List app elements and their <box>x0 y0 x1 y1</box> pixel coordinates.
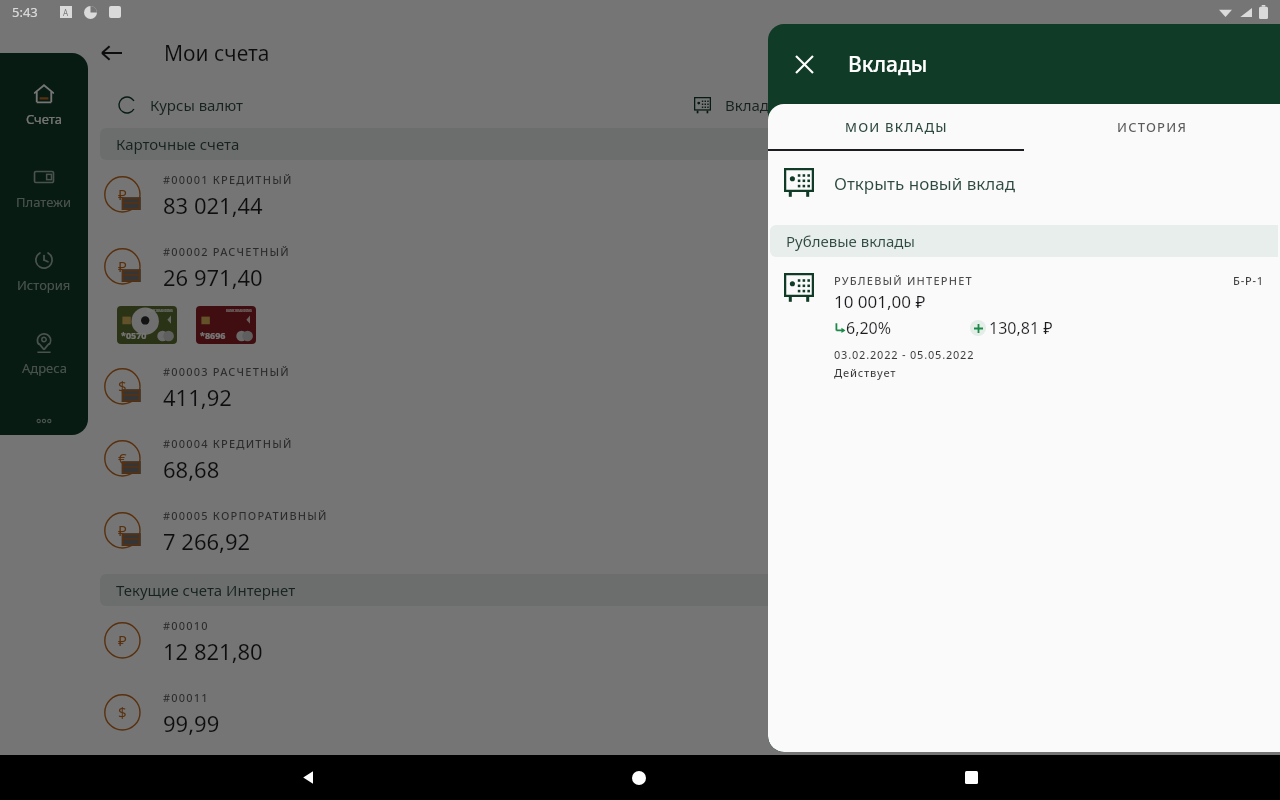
button[interactable]: Вклады <box>684 82 1280 128</box>
staticText: Вклады <box>848 50 928 79</box>
staticText: Счета <box>26 110 63 128</box>
staticText: Открыть новый вклад <box>834 172 1016 195</box>
staticText: #00005 КОРПОРАТИВНЫЙ <box>163 508 328 523</box>
button[interactable]: Back <box>285 755 331 800</box>
staticText: 411,92 <box>163 382 232 412</box>
staticText: *8696 <box>200 329 226 341</box>
button[interactable]: $ <box>88 352 1280 424</box>
staticText: Действует <box>834 365 897 380</box>
staticText: ₽ <box>118 184 127 204</box>
button[interactable]: Курсы валют <box>88 82 684 128</box>
button[interactable]: BANK BRANDING <box>117 306 177 344</box>
button[interactable]: МОИ ВКЛАДЫ <box>768 104 1024 149</box>
button[interactable]: ИСТОРИЯ <box>1024 104 1280 149</box>
button[interactable]: ₽ <box>88 606 1280 678</box>
staticText: #00010 <box>163 618 209 633</box>
staticText: Платежи <box>16 193 72 211</box>
button[interactable]: История <box>0 241 88 302</box>
staticText: 03.02.2022 - 05.05.2022 <box>834 347 975 362</box>
staticText: История <box>17 276 71 294</box>
staticText: ₽ <box>118 256 127 276</box>
staticText: ₽ <box>118 520 127 540</box>
staticText: ИСТОРИЯ <box>1117 118 1188 136</box>
staticText: #00001 КРЕДИТНЫЙ <box>163 172 293 187</box>
staticText: 130,81 ₽ <box>989 317 1053 339</box>
staticText: 5:43 <box>12 3 38 21</box>
staticText: 7 266,92 <box>163 526 251 556</box>
staticText: 83 021,44 <box>163 190 263 220</box>
staticText: Б-Р-1 <box>1233 273 1264 288</box>
staticText: 68,68 <box>163 454 220 484</box>
staticText: *0570 <box>121 329 147 341</box>
staticText: $ <box>118 376 127 396</box>
button[interactable]: Адреса <box>0 324 88 385</box>
staticText: Карточные счета <box>116 134 240 154</box>
button[interactable]: ₽ <box>88 496 1280 568</box>
staticText: Текущие счета Интернет <box>116 580 296 600</box>
button[interactable]: Ещё <box>0 407 88 435</box>
staticText: 99,99 <box>163 708 220 738</box>
button[interactable]: Открыть новый вклад <box>768 151 1280 215</box>
staticText: ₽ <box>118 630 127 650</box>
button[interactable]: BANK BRANDING <box>196 306 256 344</box>
staticText: A <box>63 7 69 18</box>
staticText: 26 971,40 <box>163 262 263 292</box>
button[interactable]: ₽ <box>88 160 1280 232</box>
button[interactable]: Home <box>616 755 662 800</box>
staticText: #00003 РАСЧЕТНЫЙ <box>163 364 290 379</box>
staticText: $ <box>118 702 127 722</box>
button[interactable]: € <box>88 424 1280 496</box>
staticText: 10 001,00 ₽ <box>834 290 926 313</box>
staticText: BANK BRANDING <box>226 309 252 313</box>
staticText: Адреса <box>22 359 67 377</box>
staticText: BANK BRANDING <box>147 309 173 313</box>
staticText: #00002 РАСЧЕТНЫЙ <box>163 244 290 259</box>
button[interactable]: $ <box>88 678 1280 750</box>
staticText: Курсы валют <box>150 95 244 115</box>
button[interactable]: Close <box>782 42 826 86</box>
button[interactable]: РУБЛЕВЫЙ ИНТЕРНЕТ <box>768 257 1280 380</box>
button[interactable]: Back <box>88 29 136 77</box>
staticText: МОИ ВКЛАДЫ <box>845 118 948 136</box>
staticText: РУБЛЕВЫЙ ИНТЕРНЕТ <box>834 273 973 288</box>
button[interactable]: ₽ <box>88 232 1280 304</box>
staticText: € <box>118 448 127 468</box>
staticText: Вклады <box>725 95 781 115</box>
button[interactable]: Платежи <box>0 158 88 219</box>
staticText: Рублевые вклады <box>786 231 915 251</box>
button[interactable]: Счета <box>0 75 88 136</box>
button[interactable]: Recent apps <box>948 755 994 800</box>
staticText: 12 821,80 <box>163 636 263 666</box>
staticText: Мои счета <box>164 39 270 68</box>
staticText: #00011 <box>163 690 209 705</box>
staticText: 6,20% <box>846 317 892 339</box>
staticText: #00004 КРЕДИТНЫЙ <box>163 436 293 451</box>
